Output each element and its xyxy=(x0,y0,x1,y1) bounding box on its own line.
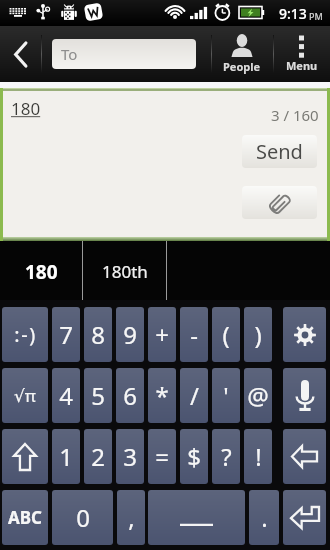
button[interactable]: space xyxy=(148,490,245,545)
button[interactable]: mic xyxy=(283,368,326,423)
staticText: People xyxy=(223,59,261,74)
staticText: √π xyxy=(14,384,36,407)
button[interactable]: ) xyxy=(244,307,272,362)
button[interactable]: . xyxy=(249,490,279,545)
staticText: To xyxy=(61,44,78,64)
staticText: Send xyxy=(256,138,303,165)
button[interactable]: 180th xyxy=(83,241,166,300)
staticText: * xyxy=(155,379,169,412)
button[interactable]: * xyxy=(148,368,176,423)
button[interactable]: = xyxy=(148,429,176,484)
staticText: 3 / 160 xyxy=(271,105,319,125)
button[interactable]: To xyxy=(52,39,196,69)
button[interactable]: - xyxy=(180,307,208,362)
button[interactable]: $ xyxy=(180,429,208,484)
staticText: 7 xyxy=(59,318,73,351)
button[interactable]: 1 xyxy=(52,429,80,484)
button[interactable]: Menu xyxy=(273,26,330,82)
button[interactable]: 7 xyxy=(52,307,80,362)
button[interactable]: √π xyxy=(2,368,48,423)
staticText: + xyxy=(155,318,169,351)
staticText: 180th xyxy=(102,260,148,283)
button[interactable]: ' xyxy=(212,368,240,423)
staticText: = xyxy=(155,440,169,473)
staticText: ) xyxy=(254,318,262,351)
staticText: 8 xyxy=(91,318,105,351)
button[interactable]: Attach xyxy=(242,186,317,219)
staticText: :-) xyxy=(14,321,37,348)
button[interactable]: + xyxy=(148,307,176,362)
button[interactable]: ? xyxy=(212,429,240,484)
button[interactable]: ( xyxy=(212,307,240,362)
staticText: , xyxy=(128,501,135,534)
staticText: ? xyxy=(221,440,232,473)
button[interactable]: 5 xyxy=(84,368,112,423)
button[interactable]: 2 xyxy=(84,429,112,484)
staticText: 3 xyxy=(123,440,137,473)
button[interactable]: , xyxy=(117,490,145,545)
button[interactable]: 9 xyxy=(116,307,144,362)
button[interactable]: del xyxy=(283,429,326,484)
staticText: Menu xyxy=(286,58,318,73)
staticText: 2 xyxy=(91,440,105,473)
staticText: 9 xyxy=(123,318,137,351)
staticText: @ xyxy=(247,379,269,412)
staticText: . xyxy=(261,501,268,534)
button[interactable]: ABC xyxy=(2,490,48,545)
staticText: 5 xyxy=(91,379,105,412)
staticText: 1 xyxy=(59,440,73,473)
button[interactable]: shift xyxy=(2,429,48,484)
button[interactable]: @ xyxy=(244,368,272,423)
staticText: ABC xyxy=(8,506,42,529)
button[interactable]: People xyxy=(211,26,273,82)
button[interactable]: / xyxy=(180,368,208,423)
staticText: PM xyxy=(309,10,323,22)
button[interactable]: ! xyxy=(244,429,272,484)
staticText: 180 xyxy=(11,97,41,120)
button[interactable]: gear xyxy=(283,307,326,362)
button[interactable]: 8 xyxy=(84,307,112,362)
staticText: 180 xyxy=(25,259,58,285)
staticText: 9:13 xyxy=(279,4,307,23)
button[interactable]: Send xyxy=(242,135,317,168)
staticText: - xyxy=(190,318,198,351)
button[interactable]: 3 xyxy=(116,429,144,484)
button[interactable]: 6 xyxy=(116,368,144,423)
button[interactable]: 0 xyxy=(52,490,113,545)
staticText: $ xyxy=(187,440,201,473)
staticText: ' xyxy=(223,379,229,412)
staticText: 6 xyxy=(123,379,137,412)
staticText: ! xyxy=(255,440,262,473)
button[interactable]: Back xyxy=(0,26,41,82)
button[interactable]: 180 xyxy=(0,241,82,300)
staticText: 4 xyxy=(59,379,73,412)
staticText: 0 xyxy=(76,501,90,534)
staticText: / xyxy=(190,379,199,412)
button[interactable]: enter xyxy=(283,490,326,545)
staticText: ( xyxy=(222,318,230,351)
button[interactable]: :-) xyxy=(2,307,48,362)
button[interactable]: 4 xyxy=(52,368,80,423)
